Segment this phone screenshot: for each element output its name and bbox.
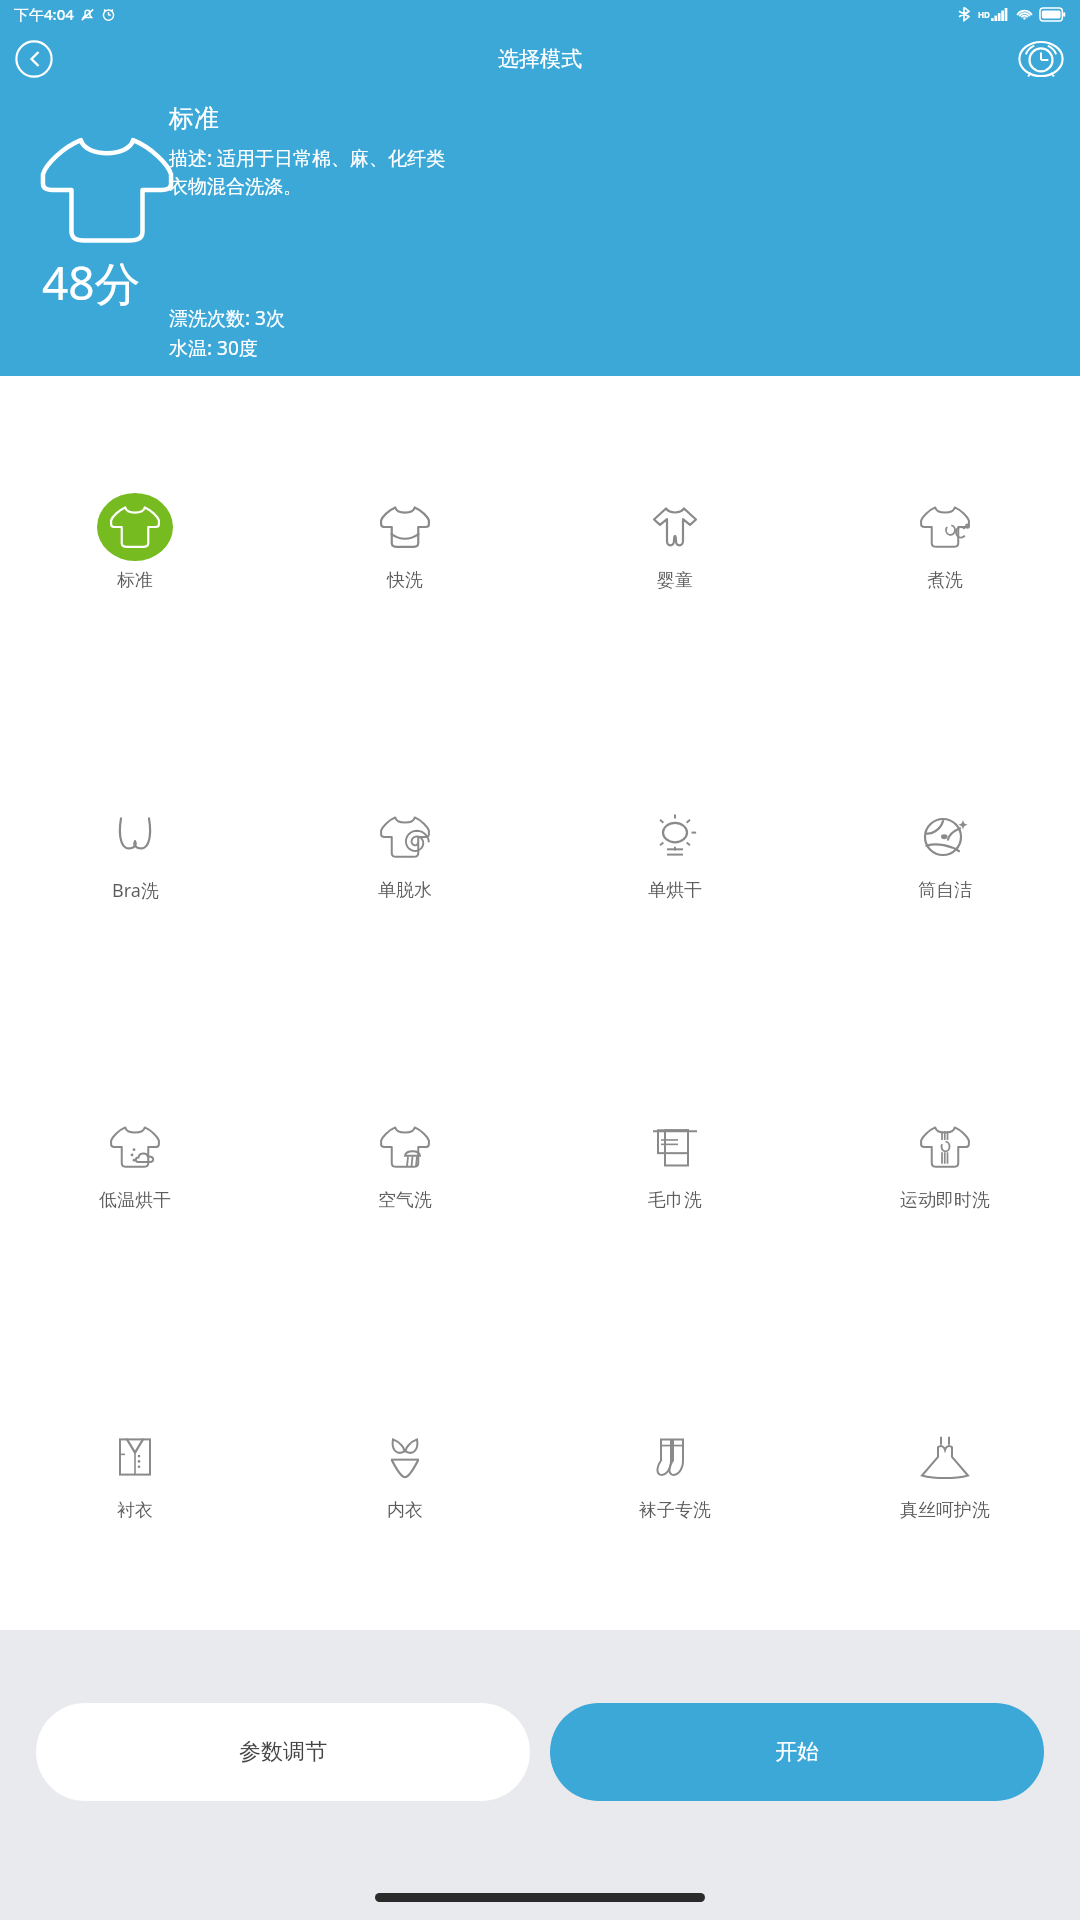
staticText: 煮洗 [927,569,963,592]
staticText: 空气洗 [378,1189,432,1212]
staticText: 单烘干 [648,879,702,902]
button[interactable]: 煮洗 [810,386,1080,696]
button[interactable]: Back [14,39,54,79]
staticText: 衬衣 [117,1499,153,1522]
button[interactable]: 衬衣 [0,1316,270,1626]
staticText: 选择模式 [498,46,582,72]
staticText: Bra洗 [112,878,159,903]
staticText: 标准 [169,103,219,134]
button[interactable]: 参数调节 [36,1703,530,1801]
staticText: 水温: 30度 [169,335,258,361]
staticText: 运动即时洗 [900,1189,990,1212]
button[interactable]: Bra洗 [0,696,270,1006]
button[interactable]: 单脱水 [270,696,540,1006]
button[interactable]: 真丝呵护洗 [810,1316,1080,1626]
staticText: 开始 [775,1738,819,1766]
staticText: 描述: 适用于日常棉、麻、化纤类 衣物混合洗涤。 [169,145,446,199]
staticText: 低温烘干 [99,1189,171,1212]
staticText: 筒自洁 [918,879,972,902]
staticText: HD [978,9,990,20]
staticText: 内衣 [387,1499,423,1522]
button[interactable]: 内衣 [270,1316,540,1626]
button[interactable]: 袜子专洗 [540,1316,810,1626]
staticText: 48分 [42,251,141,314]
button[interactable]: 低温烘干 [0,1006,270,1316]
button[interactable]: 毛巾洗 [540,1006,810,1316]
staticText: 真丝呵护洗 [900,1499,990,1522]
staticText: 下午4:04 [14,4,74,24]
button[interactable]: 快洗 [270,386,540,696]
staticText: 袜子专洗 [639,1499,711,1522]
button[interactable]: 单烘干 [540,696,810,1006]
button[interactable]: 运动即时洗 [810,1006,1080,1316]
staticText: 漂洗次数: 3次 [169,305,285,331]
staticText: 参数调节 [239,1738,327,1766]
button[interactable]: Reservation timer [1018,36,1064,82]
button[interactable]: 开始 [550,1703,1044,1801]
staticText: 毛巾洗 [648,1189,702,1212]
staticText: 标准 [117,569,153,592]
button[interactable]: 婴童 [540,386,810,696]
button[interactable]: 空气洗 [270,1006,540,1316]
staticText: 婴童 [657,569,693,592]
staticText: 单脱水 [378,879,432,902]
staticText: 快洗 [387,569,423,592]
button[interactable]: 筒自洁 [810,696,1080,1006]
button[interactable]: 标准 [0,386,270,696]
